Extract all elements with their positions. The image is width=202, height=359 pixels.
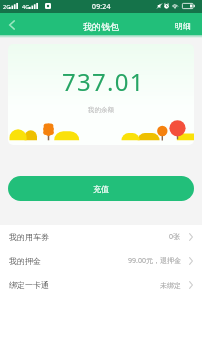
- button[interactable]: 我的押金: [0, 249, 202, 273]
- staticText: 绑定一卡通: [9, 280, 49, 290]
- button[interactable]: 明细: [167, 13, 202, 35]
- button[interactable]: 我的用车券: [0, 225, 202, 249]
- staticText: 我的余额: [88, 106, 114, 114]
- button[interactable]: Back: [0, 13, 23, 35]
- staticText: 充值: [93, 184, 109, 194]
- staticText: 99.00元，退押金: [128, 256, 181, 266]
- staticText: 4G: [22, 3, 30, 11]
- staticText: 0张: [169, 232, 181, 242]
- staticText: 未绑定: [160, 281, 181, 290]
- staticText: 我的用车券: [9, 232, 49, 242]
- staticText: 我的押金: [9, 256, 41, 266]
- staticText: 737.01: [62, 65, 145, 98]
- button[interactable]: 充值: [8, 176, 194, 201]
- staticText: 明细: [175, 21, 191, 31]
- button[interactable]: 绑定一卡通: [0, 273, 202, 297]
- staticText: 2G: [3, 3, 11, 11]
- staticText: 我的钱包: [83, 21, 119, 32]
- staticText: 09:24: [92, 2, 111, 11]
